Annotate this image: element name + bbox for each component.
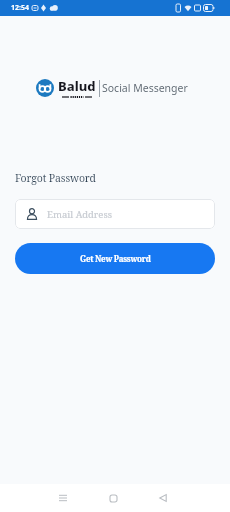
staticText: 12:54 — [11, 3, 29, 13]
button[interactable]: Email Address — [15, 199, 215, 229]
staticText: Forgot Password — [15, 171, 96, 185]
staticText: Get New Password — [80, 253, 151, 264]
staticText: Email Address — [47, 208, 112, 221]
button[interactable]: Get New Password — [15, 243, 215, 274]
staticText: Balud — [58, 77, 96, 95]
button[interactable] — [102, 487, 124, 509]
button[interactable] — [152, 487, 174, 509]
staticText: Social Messenger — [102, 81, 188, 95]
button[interactable] — [52, 487, 74, 509]
